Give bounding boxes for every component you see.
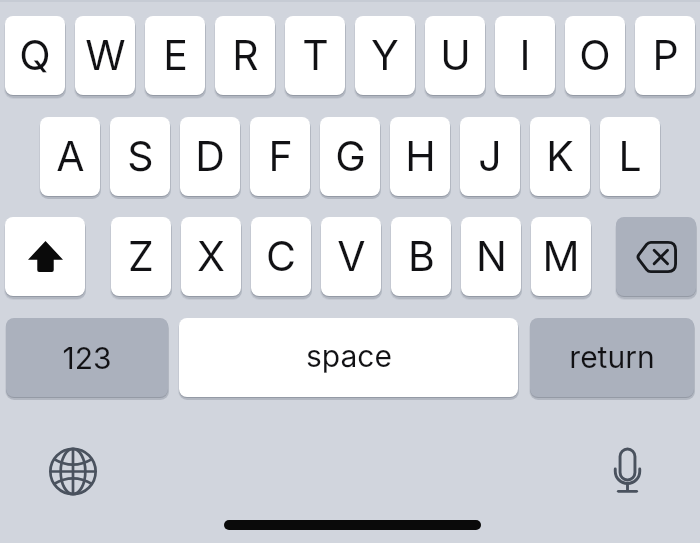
button[interactable]: space <box>179 318 518 397</box>
staticText: Z <box>128 231 154 281</box>
staticText: G <box>335 131 366 181</box>
button[interactable]: S <box>110 117 170 196</box>
staticText: Q <box>19 30 51 80</box>
button[interactable]: R <box>215 16 275 95</box>
staticText: 123 <box>62 340 112 376</box>
staticText: K <box>546 131 574 181</box>
staticText: C <box>266 231 296 281</box>
staticText: P <box>652 30 679 80</box>
button[interactable]: Y <box>355 16 415 95</box>
staticText: S <box>127 131 154 181</box>
staticText: R <box>232 30 259 80</box>
staticText: M <box>542 231 580 281</box>
button[interactable]: Q <box>5 16 65 95</box>
button[interactable]: K <box>530 117 590 196</box>
button[interactable]: return <box>530 318 694 397</box>
button[interactable]: J <box>460 117 520 196</box>
button[interactable]: N <box>461 217 521 296</box>
staticText: Y <box>371 30 399 80</box>
button[interactable]: Delete <box>616 217 696 296</box>
button[interactable]: G <box>320 117 380 196</box>
button[interactable]: L <box>600 117 660 196</box>
button[interactable]: I <box>495 16 555 95</box>
staticText: X <box>197 231 225 281</box>
button[interactable]: T <box>285 16 345 95</box>
staticText: B <box>408 231 435 281</box>
button[interactable]: Z <box>111 217 171 296</box>
staticText: H <box>405 131 436 181</box>
staticText: A <box>56 131 85 181</box>
button[interactable]: A <box>40 117 100 196</box>
staticText: F <box>268 131 293 181</box>
staticText: V <box>337 231 366 281</box>
staticText: L <box>618 131 642 181</box>
staticText: J <box>478 131 502 181</box>
staticText: N <box>476 231 507 281</box>
button[interactable]: O <box>565 16 625 95</box>
button[interactable]: U <box>425 16 485 95</box>
button[interactable]: Change keyboard <box>44 441 102 499</box>
button[interactable]: Shift <box>5 217 85 296</box>
button[interactable]: X <box>181 217 241 296</box>
button[interactable]: Dictation <box>598 441 656 499</box>
staticText: E <box>163 30 188 80</box>
staticText: I <box>519 30 531 80</box>
staticText: O <box>579 30 611 80</box>
button[interactable]: B <box>391 217 451 296</box>
button[interactable]: 123 <box>6 318 168 397</box>
button[interactable]: P <box>635 16 695 95</box>
button[interactable]: F <box>250 117 310 196</box>
button[interactable]: W <box>75 16 135 95</box>
staticText: D <box>195 131 225 181</box>
button[interactable]: M <box>531 217 591 296</box>
button[interactable]: C <box>251 217 311 296</box>
button[interactable]: D <box>180 117 240 196</box>
staticText: T <box>302 30 329 80</box>
staticText: W <box>85 30 126 80</box>
staticText: U <box>440 30 471 80</box>
button[interactable]: E <box>145 16 205 95</box>
button[interactable]: V <box>321 217 381 296</box>
button[interactable]: H <box>390 117 450 196</box>
staticText: space <box>306 338 392 374</box>
staticText: return <box>569 339 655 375</box>
